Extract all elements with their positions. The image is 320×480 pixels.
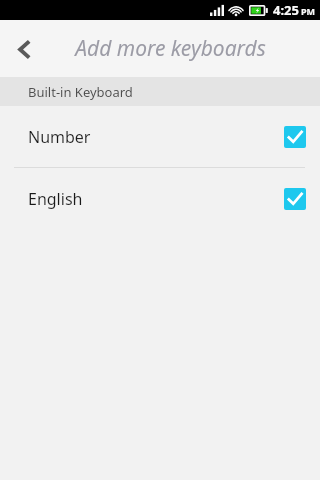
button[interactable]: Back <box>0 25 48 73</box>
staticText: English <box>28 188 284 210</box>
staticText: PM <box>301 5 316 17</box>
button[interactable]: English <box>0 168 320 229</box>
button[interactable]: Number <box>0 106 320 167</box>
staticText: 4:25 <box>273 1 299 19</box>
button[interactable]: Enabled <box>284 126 306 148</box>
staticText: Built-in Keyboard <box>28 83 133 101</box>
staticText: Number <box>28 126 284 148</box>
button[interactable]: Enabled <box>284 188 306 210</box>
staticText: Add more keyboards <box>75 34 266 63</box>
